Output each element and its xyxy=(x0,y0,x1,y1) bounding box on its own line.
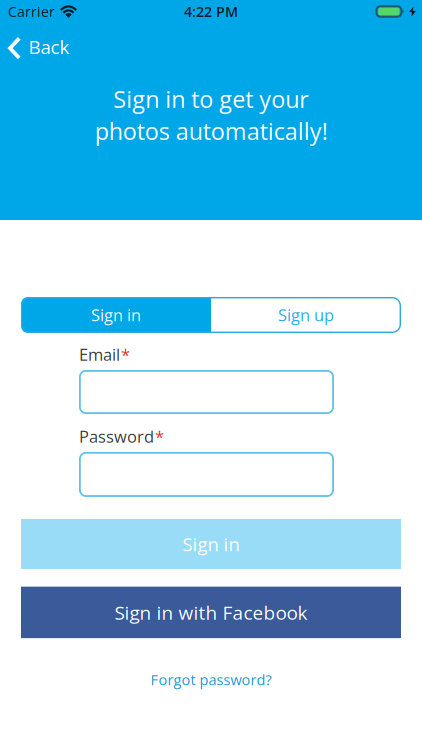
staticText: Sign in xyxy=(91,304,141,326)
staticText: Sign in xyxy=(182,531,239,557)
staticText: 4:22 PM xyxy=(184,2,238,21)
staticText: Sign in to get your photos automatically… xyxy=(94,83,327,147)
staticText: * xyxy=(155,425,164,448)
staticText: Forgot password? xyxy=(150,670,271,689)
button[interactable]: Sign in xyxy=(21,519,401,569)
button[interactable]: Sign up xyxy=(211,297,401,333)
staticText: Sign up xyxy=(278,304,334,326)
staticText: Password xyxy=(79,425,154,448)
button[interactable]: Sign in with Facebook xyxy=(21,587,401,638)
staticText: Back xyxy=(28,34,69,60)
button[interactable]: Sign in xyxy=(21,297,211,333)
staticText: * xyxy=(121,343,130,366)
button[interactable]: Forgot password? xyxy=(150,670,271,689)
button[interactable]: Back xyxy=(0,34,69,60)
staticText: Email xyxy=(79,343,120,366)
staticText: Carrier xyxy=(8,2,55,21)
staticText: Sign in with Facebook xyxy=(114,599,307,625)
